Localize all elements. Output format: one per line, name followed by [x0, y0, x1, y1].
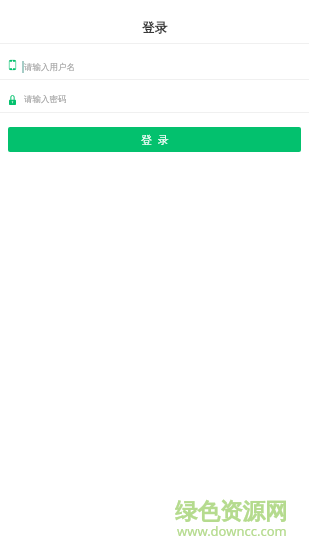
- button[interactable]: 登 录: [8, 127, 301, 152]
- staticText: www.downcc.com: [177, 522, 287, 540]
- staticText: 请输入密码: [24, 94, 67, 105]
- staticText: 请输入用户名: [24, 62, 75, 73]
- button[interactable]: 用户名输入框: [0, 44, 309, 80]
- button[interactable]: 密码输入框: [0, 80, 309, 113]
- staticText: 登 录: [141, 132, 169, 147]
- staticText: 绿色资源网: [175, 497, 288, 525]
- staticText: 登录: [142, 20, 167, 36]
